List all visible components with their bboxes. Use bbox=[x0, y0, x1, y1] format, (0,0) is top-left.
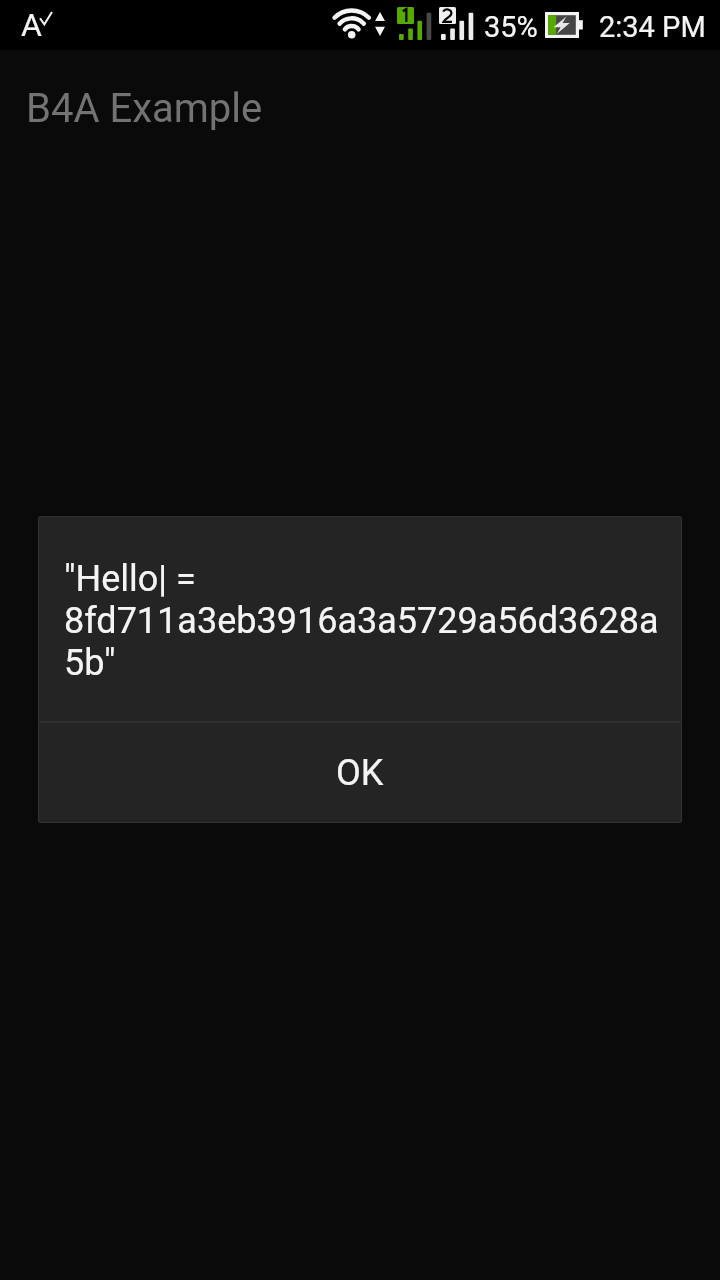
other: Data activity bbox=[375, 12, 385, 36]
button[interactable]: OK bbox=[38, 723, 682, 823]
staticText: A bbox=[21, 6, 42, 44]
staticText: OK bbox=[336, 752, 384, 794]
other: Wi-Fi connected bbox=[328, 4, 376, 44]
staticText: 35% bbox=[484, 10, 538, 44]
staticText: "Hello| = 8fd711a3eb3916a3a5729a56d3628a… bbox=[64, 558, 660, 684]
other: SIM 1 signal strength bbox=[397, 7, 429, 34]
other: Battery 35 percent, charging bbox=[545, 12, 584, 38]
other: SIM 2 signal strength bbox=[439, 7, 471, 34]
staticText: 2:34 PM bbox=[599, 10, 706, 44]
other: Keyboard language bbox=[16, 4, 58, 46]
staticText: B4A Example bbox=[26, 85, 263, 132]
